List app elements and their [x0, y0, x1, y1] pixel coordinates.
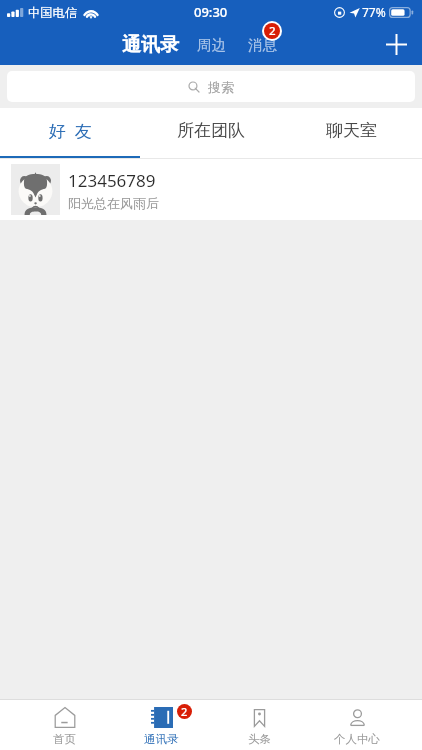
staticText: 首页	[53, 732, 76, 746]
button[interactable]: 123456789	[0, 159, 422, 220]
staticText: 通讯录	[144, 732, 179, 746]
staticText: 中国电信	[28, 5, 78, 20]
button[interactable]: 所在团队	[140, 108, 281, 158]
button[interactable]: Add	[370, 24, 422, 65]
staticText: 周边	[197, 36, 226, 54]
staticText: 77%	[362, 4, 386, 20]
staticText: 头条	[248, 732, 271, 746]
button[interactable]: 2	[113, 700, 210, 750]
button[interactable]: 周边	[192, 32, 231, 58]
staticText: 所在团队	[177, 120, 245, 141]
staticText: 好 友	[49, 119, 92, 142]
button[interactable]: 通讯录	[117, 29, 184, 61]
staticText: 2	[269, 23, 276, 39]
staticText: 2	[181, 704, 188, 719]
staticText: 搜索	[208, 79, 234, 95]
staticText: 通讯录	[122, 33, 179, 57]
button[interactable]: 好 友	[0, 108, 140, 158]
staticText: 09:30	[194, 3, 228, 21]
button[interactable]: 个人中心	[308, 700, 406, 750]
staticText: 聊天室	[326, 120, 377, 141]
button[interactable]: 搜索	[7, 71, 415, 102]
staticText: 阳光总在风雨后	[68, 195, 159, 211]
staticText: 123456789	[68, 169, 156, 192]
staticText: 消息	[248, 36, 277, 54]
button[interactable]: 消息	[243, 31, 282, 59]
button[interactable]: 头条	[210, 700, 308, 750]
staticText: 个人中心	[334, 732, 380, 746]
button[interactable]: 首页	[16, 700, 113, 750]
button[interactable]: 聊天室	[281, 108, 422, 158]
